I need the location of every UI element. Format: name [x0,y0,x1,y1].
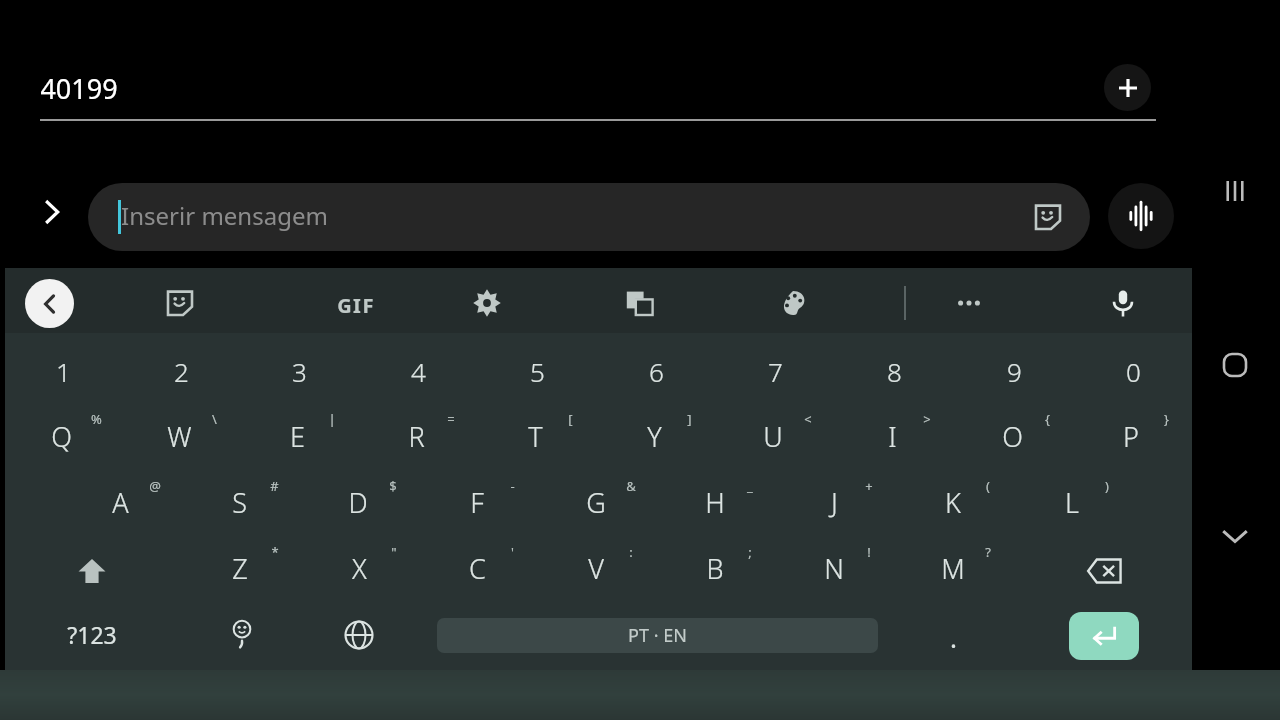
button[interactable]: Enter [1069,612,1139,660]
button[interactable]: E [257,405,337,467]
button[interactable]: Y [614,405,694,467]
button[interactable]: 6 [616,340,696,402]
staticText: T [528,418,543,455]
staticText: L [1065,484,1079,521]
button[interactable]: Backspace [1075,542,1133,600]
staticText: & [626,477,636,495]
staticText: I [888,418,897,455]
staticText: 40199 [40,70,118,107]
staticText: 1 [56,354,71,389]
button[interactable]: U [733,405,813,467]
staticText: 0 [1126,354,1141,389]
staticText: Inserir mensagem [121,199,328,232]
button[interactable]: Voice message [1108,183,1174,249]
staticText: PT · EN [628,623,687,648]
button[interactable]: Translate [616,279,664,327]
button[interactable]: ?123 [52,608,132,660]
button[interactable]: Emoji [215,606,269,660]
staticText: ; [748,543,752,561]
button[interactable]: PT · EN [437,618,878,653]
staticText: < [804,410,812,428]
staticText: P [1123,418,1139,455]
button[interactable]: W [139,405,219,467]
staticText: D [348,484,368,521]
button[interactable]: B [675,537,755,599]
staticText: N [824,550,844,587]
button[interactable]: R [376,405,456,467]
button[interactable]: Add [1104,64,1151,111]
staticText: F [470,484,484,521]
button[interactable]: V [556,537,636,599]
button[interactable]: Settings [463,279,511,327]
button[interactable]: T [495,405,575,467]
button[interactable]: Stickers [156,279,204,327]
button[interactable]: More options [945,279,993,327]
button[interactable]: S [199,471,279,533]
button[interactable]: L [1032,471,1112,533]
button[interactable]: A [80,471,160,533]
staticText: 9 [1007,354,1022,389]
button[interactable]: Expand [30,190,74,234]
button[interactable]: K [913,471,993,533]
staticText: S [232,484,247,521]
button[interactable]: Home [1206,336,1264,394]
staticText: U [763,418,783,455]
button[interactable]: D [318,471,398,533]
staticText: M [941,550,965,587]
staticText: E [290,418,305,455]
button[interactable]: Shift [63,542,121,600]
staticText: G [586,484,606,521]
button[interactable]: M [913,537,993,599]
button[interactable]: 8 [854,340,934,402]
button[interactable]: X [319,537,399,599]
staticText: > [923,410,931,428]
button[interactable]: 7 [735,340,815,402]
button[interactable]: Recents [1206,162,1264,220]
button[interactable]: Back [25,279,74,328]
staticText: = [447,410,455,428]
button[interactable]: 40199 [40,70,440,112]
button[interactable]: 3 [259,340,339,402]
button[interactable]: C [437,537,517,599]
button[interactable]: 0 [1093,340,1173,402]
staticText: 7 [768,354,783,389]
button[interactable]: Q [21,405,101,467]
button[interactable]: Themes [769,279,817,327]
button[interactable]: I [852,405,932,467]
button[interactable]: J [794,471,874,533]
staticText: ] [687,410,692,428]
button[interactable]: Voice input [1099,279,1147,327]
staticText: ' [511,543,514,561]
button[interactable]: Inserir mensagem [88,183,1090,251]
button[interactable]: 5 [497,340,577,402]
button[interactable]: O [972,405,1052,467]
staticText: A [112,484,129,521]
button[interactable]: N [794,537,874,599]
staticText: H [705,484,725,521]
button[interactable]: H [675,471,755,533]
button[interactable]: . [925,609,981,665]
staticText: 4 [411,354,426,389]
staticText: @ [149,477,161,495]
button[interactable]: G [556,471,636,533]
button[interactable]: 2 [141,340,221,402]
staticText: * [271,543,279,561]
staticText: ? [985,543,991,561]
button[interactable]: 9 [974,340,1054,402]
button[interactable]: Change language [333,609,385,661]
button[interactable]: Stickers [1028,197,1068,237]
staticText: Q [51,418,72,455]
staticText: ?123 [67,619,117,650]
button[interactable]: Z [200,537,280,599]
staticText: R [408,418,425,455]
staticText: - [510,477,515,495]
staticText: ( [986,477,990,495]
button[interactable]: 1 [23,340,103,402]
button[interactable]: GIF [332,281,380,329]
button[interactable]: Hide keyboard [1206,507,1264,565]
staticText: } [1164,410,1169,428]
staticText: . [950,620,957,655]
button[interactable]: 4 [378,340,458,402]
button[interactable]: F [437,471,517,533]
button[interactable]: P [1091,405,1171,467]
